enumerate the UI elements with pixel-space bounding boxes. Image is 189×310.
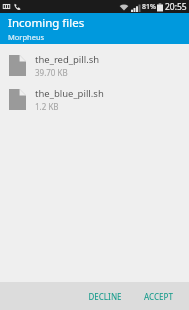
staticText: the_blue_pill.sh	[35, 87, 104, 100]
button[interactable]: the_blue_pill.sh	[0, 82, 189, 116]
button[interactable]: ACCEPT	[136, 286, 181, 307]
staticText: ACCEPT	[144, 291, 173, 302]
staticText: Morpheus	[8, 32, 45, 42]
staticText: the_red_pill.sh	[35, 53, 100, 66]
staticText: Incoming files	[8, 15, 85, 31]
button[interactable]: DECLINE	[80, 286, 130, 307]
button[interactable]: the_red_pill.sh	[0, 48, 189, 82]
staticText: 1.2 KB	[35, 101, 59, 112]
staticText: 39.70 KB	[35, 67, 68, 78]
staticText: 20:55	[165, 1, 187, 13]
staticText: DECLINE	[88, 291, 122, 302]
staticText: 81%	[142, 2, 156, 12]
